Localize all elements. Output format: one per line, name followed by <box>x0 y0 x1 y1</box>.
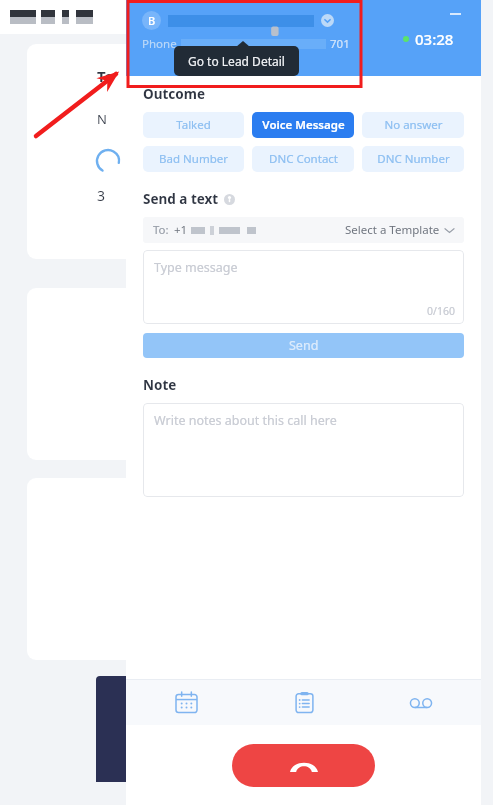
staticText: 03:28 <box>415 29 454 49</box>
staticText: Select a Template <box>345 222 440 238</box>
staticText: N <box>97 110 107 128</box>
button[interactable]: Select a Template <box>345 222 454 238</box>
button[interactable]: Script <box>280 679 328 725</box>
button[interactable]: Calendar <box>162 679 210 725</box>
staticText: Outcome <box>143 85 205 103</box>
button[interactable]: Write notes about this call here <box>143 403 464 497</box>
staticText: No answer <box>384 117 443 133</box>
button[interactable]: End call <box>232 744 375 787</box>
staticText: B <box>148 13 156 28</box>
staticText: Go to Lead Detail <box>188 53 285 69</box>
staticText: Te <box>97 66 114 86</box>
staticText: Send <box>289 337 319 354</box>
button[interactable]: DNC Contact <box>252 146 354 172</box>
staticText: 0/160 <box>427 304 455 318</box>
staticText: 701 <box>330 36 350 52</box>
staticText: Talked <box>176 117 211 133</box>
staticText: Phone <box>142 36 177 52</box>
staticText: Send a text <box>143 190 219 208</box>
button[interactable]: Send <box>143 333 464 358</box>
staticText: Note <box>143 376 177 394</box>
staticText: +1 <box>174 222 188 238</box>
button[interactable]: No answer <box>362 112 464 138</box>
staticText: Voice Message <box>262 117 345 133</box>
button[interactable]: Bad Number <box>143 146 244 172</box>
button[interactable]: Expand lead <box>321 14 334 27</box>
staticText: DNC Contact <box>269 151 338 167</box>
button[interactable]: Voicemail <box>397 679 445 725</box>
staticText: To: <box>153 222 169 238</box>
button[interactable]: Voice Message <box>252 112 354 138</box>
staticText: Bad Number <box>159 151 228 167</box>
staticText: 3 <box>97 186 106 205</box>
button[interactable]: Type message <box>143 250 464 324</box>
button[interactable]: Talked <box>143 112 244 138</box>
staticText: Type message <box>154 259 238 276</box>
button[interactable]: Lead name <box>168 15 314 27</box>
staticText: DNC Number <box>377 151 450 167</box>
button[interactable]: DNC Number <box>362 146 464 172</box>
staticText: Write notes about this call here <box>154 412 337 429</box>
